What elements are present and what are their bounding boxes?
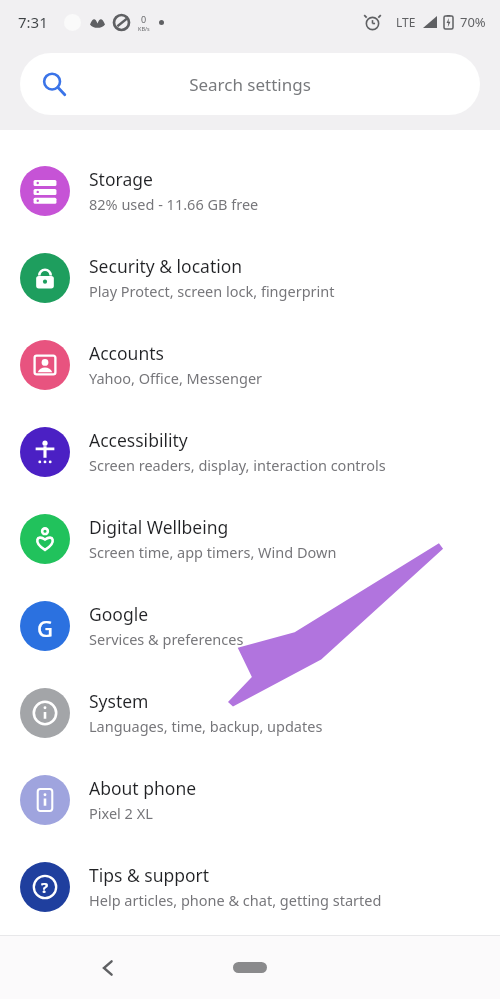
other: Search — [42, 72, 66, 96]
staticText: 82% used - 11.66 GB free — [89, 194, 259, 214]
staticText: Digital Wellbeing — [89, 515, 229, 539]
staticText: G — [37, 613, 53, 639]
button[interactable]: Home — [233, 962, 267, 973]
staticText: Play Protect, screen lock, fingerprint — [89, 281, 335, 301]
staticText: Accessibility — [89, 428, 188, 452]
staticText: Accounts — [89, 341, 164, 365]
button[interactable]: Digital Wellbeing — [0, 495, 500, 582]
staticText: 0 — [141, 13, 147, 25]
staticText: Search settings — [189, 73, 311, 96]
staticText: 70% — [460, 13, 486, 31]
button[interactable]: Back — [96, 956, 120, 980]
button[interactable]: G — [0, 582, 500, 669]
staticText: Screen readers, display, interaction con… — [89, 455, 386, 475]
staticText: Yahoo, Office, Messenger — [89, 368, 263, 388]
staticText: 7:31 — [18, 12, 48, 32]
button[interactable]: System — [0, 669, 500, 756]
button[interactable]: Accounts — [0, 321, 500, 408]
staticText: ? — [41, 877, 49, 897]
staticText: Google — [89, 602, 149, 626]
staticText: Storage — [89, 167, 153, 191]
button[interactable]: Accessibility — [0, 408, 500, 495]
staticText: KB/s — [138, 25, 150, 32]
staticText: Help articles, phone & chat, getting sta… — [89, 890, 382, 910]
staticText: LTE — [396, 14, 416, 30]
button[interactable]: Storage — [0, 147, 500, 234]
staticText: Security & location — [89, 254, 243, 278]
staticText: Pixel 2 XL — [89, 803, 153, 823]
button[interactable]: ? — [0, 843, 500, 930]
button[interactable]: Search — [20, 53, 480, 115]
staticText: Screen time, app timers, Wind Down — [89, 542, 337, 562]
button[interactable]: About phone — [0, 756, 500, 843]
staticText: System — [89, 689, 149, 713]
staticText: About phone — [89, 776, 197, 800]
staticText: Languages, time, backup, updates — [89, 716, 323, 736]
staticText: Services & preferences — [89, 629, 244, 649]
staticText: Tips & support — [89, 863, 210, 887]
button[interactable]: Security & location — [0, 234, 500, 321]
